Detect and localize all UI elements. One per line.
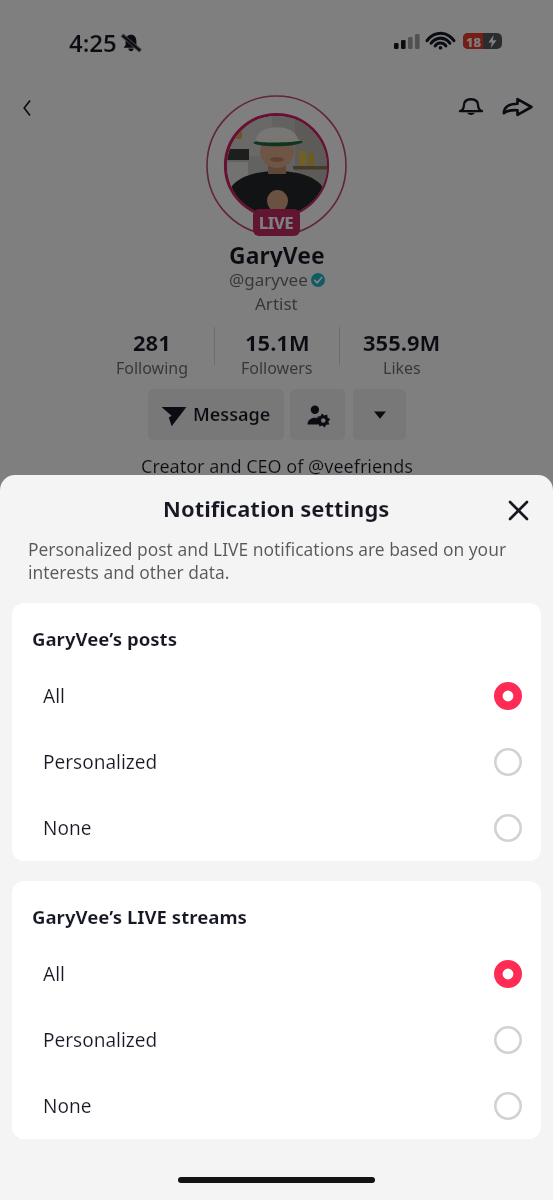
button[interactable]: Back — [7, 99, 47, 117]
button[interactable]: Personalized — [12, 729, 541, 795]
button[interactable]: Close — [500, 492, 536, 528]
staticText: Message — [193, 402, 271, 427]
staticText: LIVE — [259, 212, 294, 234]
staticText: 15.1M — [245, 327, 310, 357]
staticText: Followers — [241, 357, 313, 379]
staticText: All — [43, 961, 65, 987]
staticText: 18 — [466, 33, 481, 49]
button[interactable]: 281 — [90, 327, 214, 379]
staticText: 355.9M — [363, 327, 441, 357]
staticText: Personalized — [43, 1027, 158, 1053]
staticText: Notification settings — [163, 493, 390, 523]
staticText: Personalized post and LIVE notifications… — [28, 537, 527, 584]
staticText: 281 — [133, 327, 171, 357]
staticText: None — [43, 1093, 92, 1119]
button[interactable]: Notifications — [451, 98, 491, 116]
button[interactable]: All — [12, 941, 541, 1007]
button[interactable]: Add friends — [290, 389, 345, 440]
staticText: 4:25 — [69, 26, 117, 59]
staticText: Creator and CEO of @veefriends — [141, 454, 413, 479]
button[interactable]: None — [12, 795, 541, 861]
staticText: GaryVee — [229, 239, 325, 267]
staticText: Personalized — [43, 749, 158, 775]
staticText: All — [43, 683, 65, 709]
staticText: GaryVee’s LIVE streams — [32, 904, 247, 929]
staticText: Following — [116, 357, 189, 379]
button[interactable]: 355.9M — [340, 327, 464, 379]
staticText: @garyvee — [229, 268, 308, 291]
button[interactable]: All — [12, 663, 541, 729]
staticText: Artist — [255, 292, 298, 315]
staticText: None — [43, 815, 92, 841]
staticText: GaryVee’s posts — [32, 626, 178, 651]
button[interactable]: 15.1M — [215, 327, 339, 379]
button[interactable]: Personalized — [12, 1007, 541, 1073]
button[interactable]: Message — [148, 389, 284, 440]
staticText: Likes — [383, 357, 421, 379]
button[interactable]: Share — [497, 98, 537, 116]
button[interactable]: None — [12, 1073, 541, 1139]
button[interactable]: More — [353, 389, 406, 440]
